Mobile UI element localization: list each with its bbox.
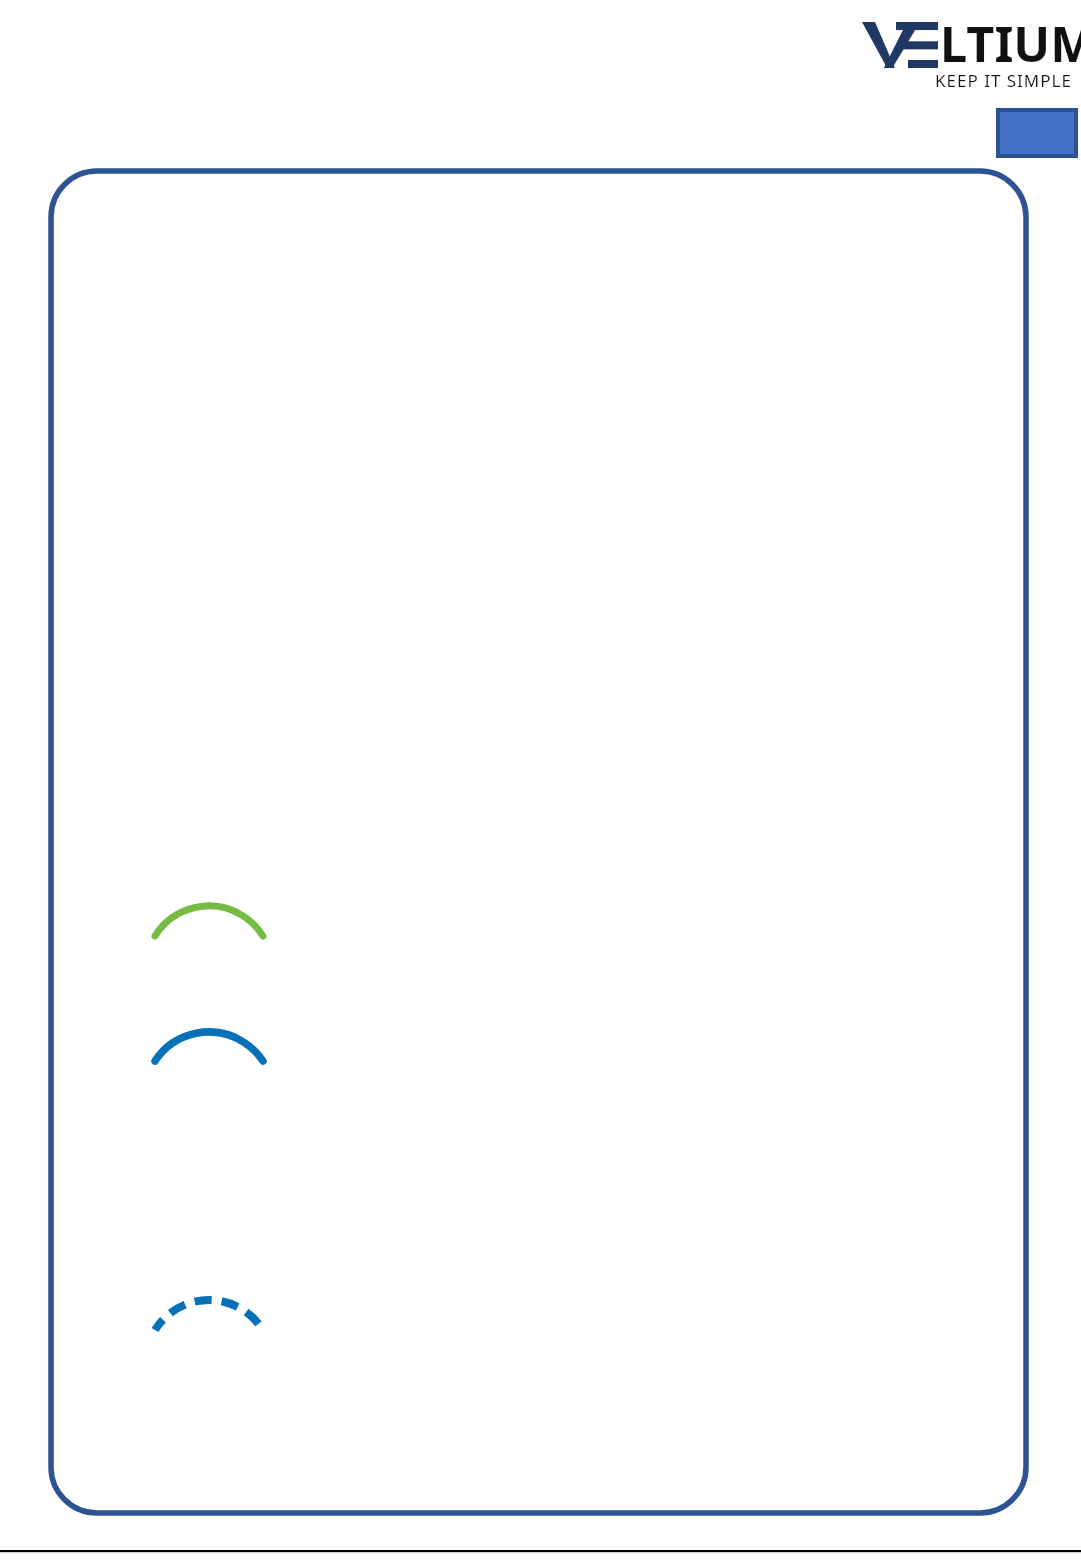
other: Veltium device diagram — [0, 0, 1081, 1561]
button[interactable]: Veltium device diagram — [0, 0, 1081, 1561]
